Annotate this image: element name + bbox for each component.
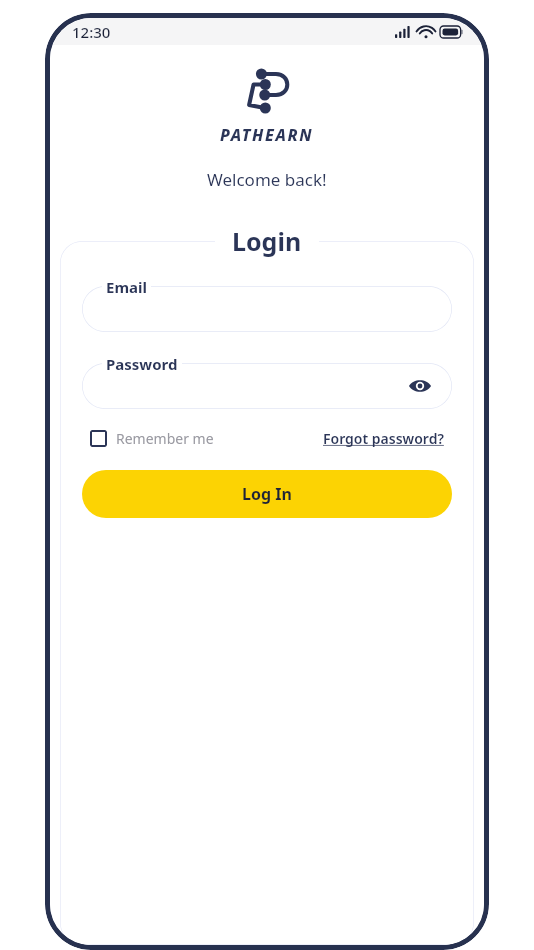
button[interactable]: Show password (82, 363, 452, 409)
button[interactable]: Show password (406, 372, 434, 400)
button[interactable]: Remember me (88, 425, 216, 452)
staticText: Forgot password? (323, 429, 444, 448)
staticText: 12:30 (72, 22, 111, 42)
staticText: Email (106, 277, 147, 297)
button[interactable] (82, 286, 452, 332)
staticText: Log In (242, 483, 292, 505)
staticText: Password (106, 354, 178, 374)
staticText: Login (232, 224, 302, 258)
staticText: PATHEARN (220, 124, 314, 146)
staticText: Remember me (116, 429, 214, 448)
button[interactable]: Log In (82, 470, 452, 518)
button[interactable]: Forgot password? (321, 425, 446, 452)
staticText: Welcome back! (207, 168, 327, 191)
